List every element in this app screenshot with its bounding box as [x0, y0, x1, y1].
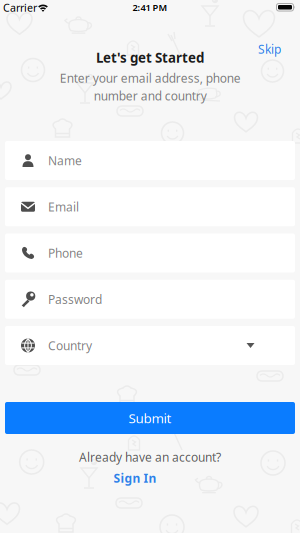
staticText: Carrier: [3, 0, 37, 15]
staticText: Phone: [48, 245, 83, 261]
staticText: Submit: [128, 409, 171, 427]
button[interactable]: Password: [5, 280, 295, 319]
staticText: Email: [48, 199, 79, 215]
staticText: Sign In: [113, 470, 156, 486]
staticText: 2:41 PM: [132, 1, 167, 14]
button[interactable]: Skip: [258, 41, 281, 57]
button[interactable]: Submit: [5, 402, 295, 434]
staticText: Enter your email address, phone number a…: [59, 70, 240, 104]
button[interactable]: Email: [5, 187, 295, 226]
button[interactable]: Sign In: [113, 470, 156, 486]
button[interactable]: Name: [5, 141, 295, 180]
staticText: Skip: [258, 41, 281, 57]
button[interactable]: Phone: [5, 233, 295, 272]
staticText: Name: [48, 152, 82, 168]
staticText: Let's get Started: [96, 49, 204, 66]
staticText: Country: [48, 337, 92, 353]
button[interactable]: Country: [5, 326, 295, 365]
staticText: Already have an account?: [79, 449, 221, 465]
staticText: Password: [48, 291, 102, 307]
